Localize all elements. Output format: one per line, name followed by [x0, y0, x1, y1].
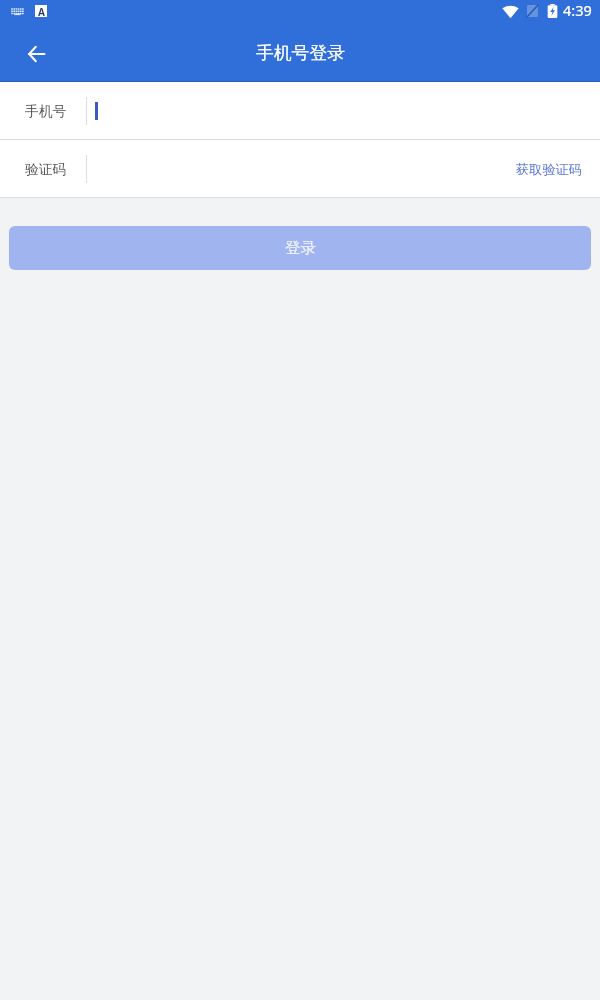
staticText: 4:39	[563, 0, 592, 20]
button[interactable]: Back	[14, 33, 58, 77]
button[interactable]: 获取验证码	[516, 154, 582, 183]
staticText: 手机号	[25, 103, 67, 120]
button[interactable]: 登录	[9, 226, 591, 270]
staticText: 登录	[285, 238, 316, 258]
button[interactable]: 手机号	[0, 82, 600, 139]
staticText: 验证码	[25, 161, 67, 178]
staticText: A	[38, 5, 45, 17]
staticText: 获取验证码	[516, 161, 582, 178]
button[interactable]: 验证码	[0, 140, 600, 197]
staticText: 手机号登录	[256, 42, 345, 64]
